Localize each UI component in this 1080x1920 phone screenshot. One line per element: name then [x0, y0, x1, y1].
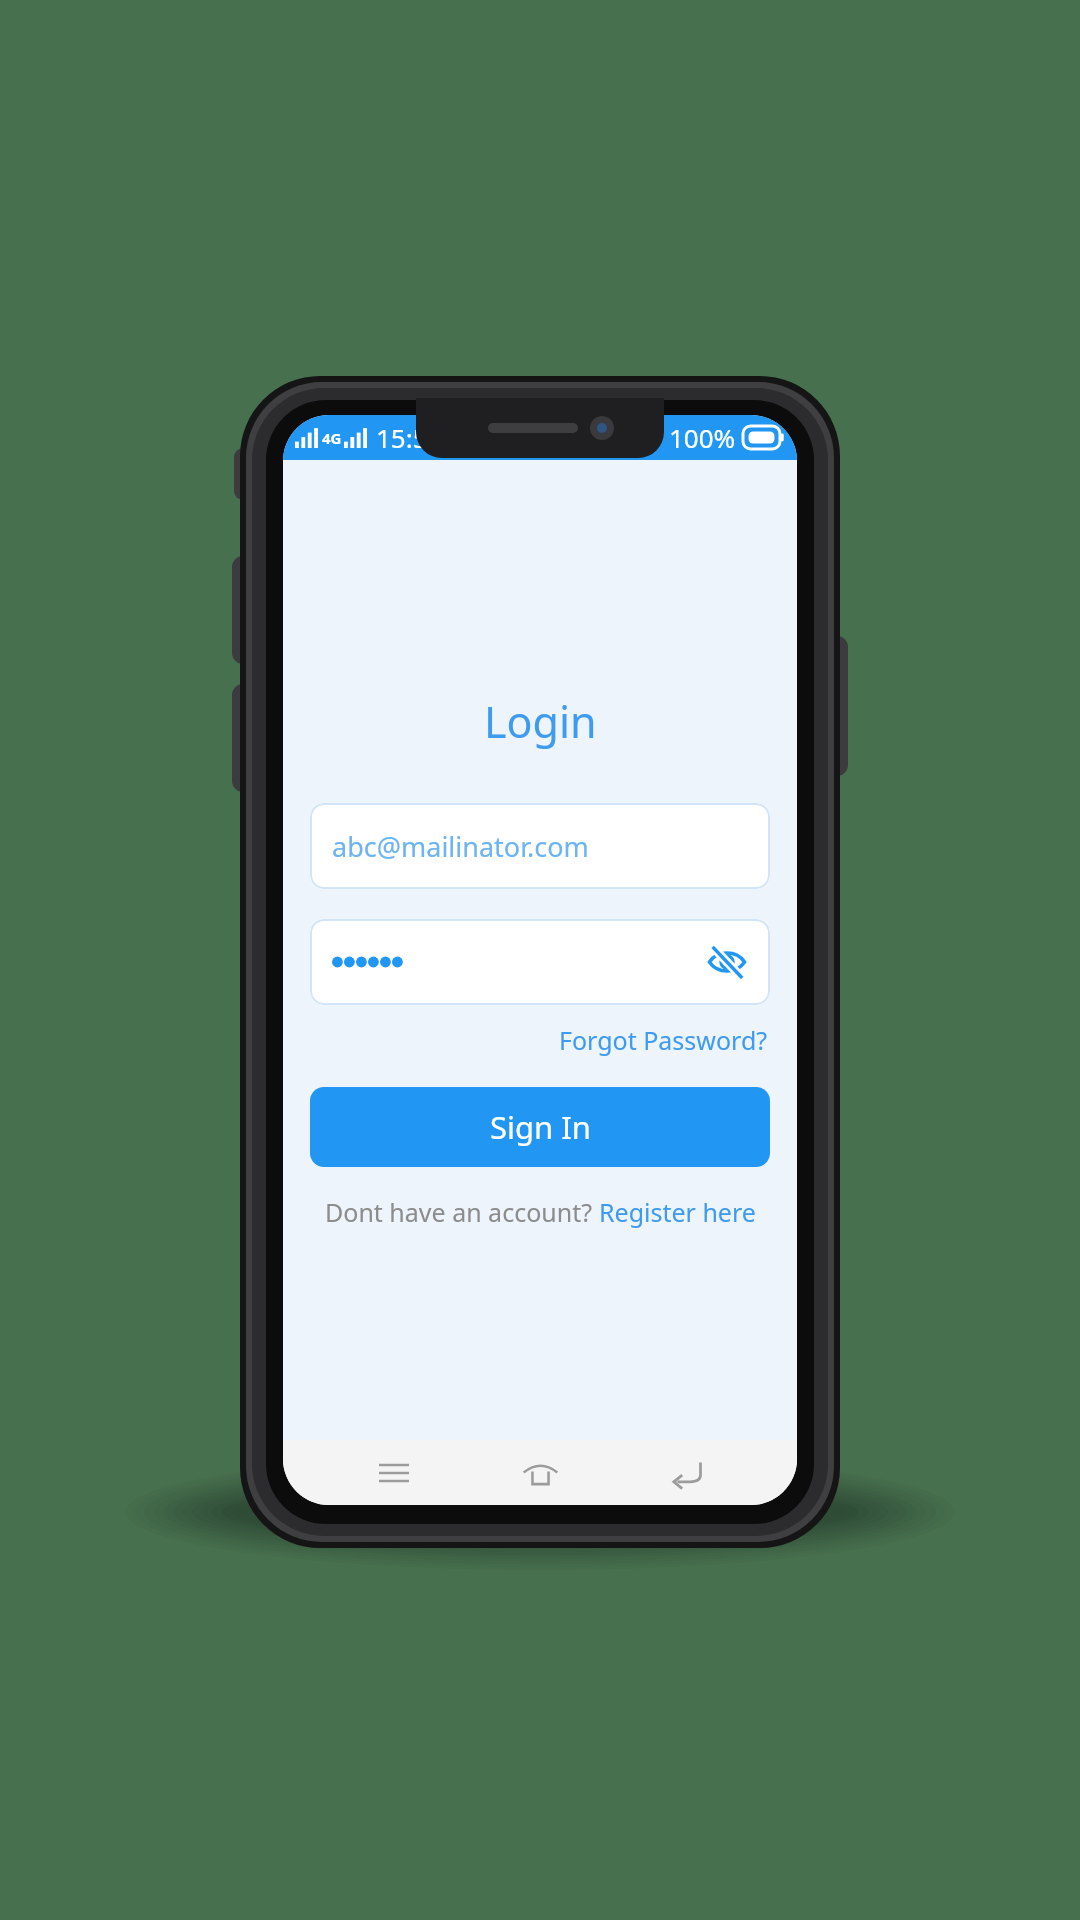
button[interactable]: Home [504, 1440, 576, 1505]
staticText: Login [484, 692, 597, 751]
staticText: 100% [669, 420, 736, 455]
button[interactable]: Toggle password visibility [700, 935, 754, 989]
staticText: abc@mailinator.com [332, 828, 589, 865]
staticText: Register here [599, 1195, 756, 1229]
button[interactable]: Back [651, 1440, 723, 1505]
staticText: Dont have an account? [325, 1195, 599, 1229]
button[interactable]: Toggle password visibility [310, 919, 770, 1005]
staticText: 15:53 [376, 420, 443, 455]
staticText: Forgot Password? [559, 1023, 768, 1057]
button[interactable]: Sign In [310, 1087, 770, 1167]
button[interactable]: Dont have an account? [321, 1191, 760, 1233]
staticText: 4G [322, 428, 342, 448]
button[interactable]: Recents [358, 1440, 430, 1505]
button[interactable]: Forgot Password? [557, 1019, 770, 1061]
button[interactable]: abc@mailinator.com [310, 803, 770, 889]
staticText: Sign In [490, 1106, 591, 1148]
